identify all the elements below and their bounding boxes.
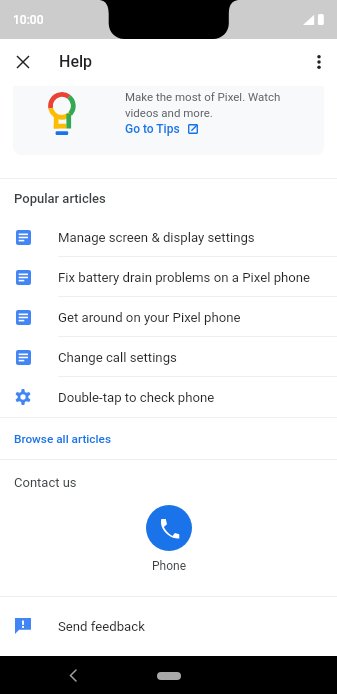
- staticText: Fix battery drain problems on a Pixel ph…: [58, 270, 311, 285]
- button[interactable]: Change call settings: [0, 337, 337, 377]
- staticText: Contact us: [14, 475, 77, 490]
- button[interactable]: Close: [5, 44, 41, 80]
- staticText: Popular articles: [14, 191, 106, 206]
- staticText: Get around on your Pixel phone: [58, 310, 241, 325]
- staticText: Help: [59, 52, 93, 71]
- button[interactable]: Browse all articles: [0, 418, 337, 459]
- button[interactable]: More options: [301, 44, 337, 80]
- button[interactable]: Explore Pixel tips: [13, 86, 324, 155]
- button[interactable]: Double-tap to check phone: [0, 377, 337, 417]
- staticText: Make the most of Pixel. Watch videos and…: [125, 90, 305, 120]
- staticText: Phone: [152, 559, 187, 573]
- staticText: Change call settings: [58, 350, 177, 365]
- button[interactable]: Manage screen & display settings: [0, 217, 337, 257]
- button[interactable]: Back: [61, 663, 85, 687]
- staticText: Send feedback: [58, 619, 145, 634]
- button[interactable]: Get around on your Pixel phone: [0, 297, 337, 337]
- staticText: Go to Tips: [125, 122, 180, 136]
- button[interactable]: Send feedback: [0, 597, 337, 655]
- staticText: Manage screen & display settings: [58, 230, 255, 245]
- button[interactable]: Fix battery drain problems on a Pixel ph…: [0, 257, 337, 297]
- button[interactable]: Home: [157, 672, 181, 680]
- staticText: 10:00: [13, 13, 44, 27]
- button[interactable]: Phone: [146, 505, 192, 573]
- staticText: Browse all articles: [14, 432, 111, 446]
- staticText: Double-tap to check phone: [58, 390, 215, 405]
